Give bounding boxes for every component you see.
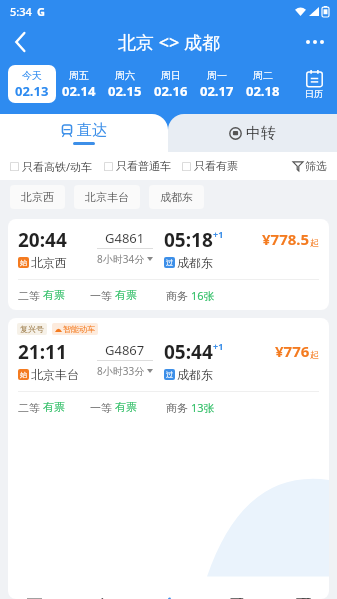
- staticText: 有票: [43, 400, 65, 414]
- staticText: 过: [166, 370, 173, 379]
- button[interactable]: 只看普通车: [104, 159, 171, 173]
- staticText: 成都东: [177, 367, 213, 382]
- staticText: 02.18: [246, 82, 280, 100]
- staticText: 一等: [90, 400, 115, 415]
- staticText: 北京西: [21, 190, 54, 204]
- button[interactable]: 北京丰台: [74, 185, 140, 209]
- button[interactable]: 北京西: [10, 185, 65, 209]
- staticText: 只看普通车: [116, 159, 171, 173]
- staticText: 今天: [22, 69, 42, 82]
- staticText: ¥778.5: [262, 229, 310, 249]
- staticText: G4867: [105, 341, 145, 359]
- button[interactable]: 周五: [56, 65, 102, 103]
- staticText: 北京丰台: [31, 367, 79, 382]
- staticText: 成都东: [160, 190, 193, 204]
- staticText: 05:44: [164, 339, 213, 365]
- staticText: 智能动车: [63, 324, 95, 334]
- staticText: G4861: [105, 229, 145, 247]
- button[interactable]: 周日: [148, 65, 194, 103]
- button[interactable]: 筛选: [293, 159, 327, 173]
- staticText: 8小时34分: [97, 252, 145, 266]
- staticText: 起: [310, 349, 319, 360]
- staticText: 二等: [18, 400, 43, 415]
- staticText: 只看高铁/动车: [22, 159, 93, 174]
- button[interactable]: Back: [0, 22, 40, 62]
- staticText: 有票: [115, 400, 137, 414]
- staticText: 周日: [161, 69, 181, 82]
- staticText: 直达: [77, 121, 107, 140]
- button[interactable]: 今天: [8, 65, 56, 103]
- staticText: 始: [20, 370, 27, 379]
- button[interactable]: 周一: [194, 65, 240, 103]
- staticText: 02.13: [15, 82, 49, 100]
- button[interactable]: 只看有票: [182, 159, 238, 173]
- staticText: 北京 <> 成都: [118, 30, 220, 55]
- staticText: 起: [310, 237, 319, 248]
- staticText: 北京丰台: [85, 190, 129, 204]
- staticText: 05:18: [164, 227, 213, 253]
- staticText: 筛选: [305, 159, 327, 173]
- staticText: +1: [213, 340, 224, 352]
- staticText: 过: [166, 258, 173, 267]
- staticText: 16张: [191, 288, 215, 303]
- staticText: G: [37, 4, 45, 19]
- staticText: 中转: [246, 124, 276, 143]
- staticText: 周六: [115, 69, 135, 82]
- staticText: 02.16: [154, 82, 188, 100]
- staticText: 5:34: [10, 4, 32, 19]
- staticText: 复兴号: [20, 324, 44, 334]
- staticText: 周五: [69, 69, 89, 82]
- staticText: 02.17: [200, 82, 234, 100]
- staticText: 02.14: [62, 82, 96, 100]
- staticText: 有票: [115, 288, 137, 302]
- staticText: 北京西: [31, 255, 67, 270]
- staticText: 周一: [207, 69, 227, 82]
- staticText: 有票: [43, 288, 65, 302]
- staticText: 二等: [18, 288, 43, 303]
- staticText: 商务: [166, 400, 191, 415]
- staticText: 8小时33分: [97, 364, 145, 378]
- button[interactable]: 中转: [168, 114, 337, 152]
- staticText: 始: [20, 258, 27, 267]
- button[interactable]: 日历: [291, 62, 337, 106]
- staticText: 只看有票: [194, 159, 238, 173]
- staticText: 成都东: [177, 255, 213, 270]
- staticText: +1: [213, 228, 224, 240]
- staticText: 13张: [191, 400, 215, 415]
- button[interactable]: 成都东: [149, 185, 204, 209]
- button[interactable]: 只看高铁/动车: [10, 159, 93, 174]
- staticText: ¥776: [275, 341, 310, 361]
- staticText: 商务: [166, 288, 191, 303]
- button[interactable]: 复兴号: [8, 318, 329, 599]
- button[interactable]: 20:44: [8, 219, 329, 310]
- button[interactable]: More options: [293, 22, 337, 62]
- staticText: 21:11: [18, 339, 67, 365]
- staticText: 02.15: [108, 82, 142, 100]
- button[interactable]: 周六: [102, 65, 148, 103]
- button[interactable]: 周二: [240, 65, 286, 103]
- staticText: 一等: [90, 288, 115, 303]
- staticText: 20:44: [18, 227, 67, 253]
- staticText: 日历: [305, 88, 323, 99]
- button[interactable]: 直达: [0, 114, 168, 152]
- staticText: 周二: [253, 69, 273, 82]
